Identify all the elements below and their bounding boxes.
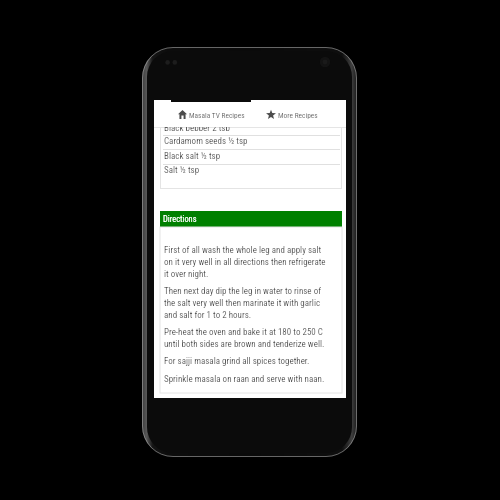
button[interactable]: Masala TV Recipes bbox=[171, 100, 251, 128]
button[interactable]: Black pepper 2 tsp bbox=[160, 127, 342, 135]
staticText: Cardamom seeds ½ tsp bbox=[164, 136, 248, 147]
button[interactable]: Cardamom seeds ½ tsp bbox=[160, 134, 342, 149]
staticText: For sajji masala grind all spices togeth… bbox=[164, 356, 310, 367]
staticText: Black salt ½ tsp bbox=[164, 151, 221, 162]
staticText: More Recipes bbox=[278, 111, 318, 120]
staticText: Directions bbox=[163, 214, 197, 224]
button[interactable]: More Recipes bbox=[256, 100, 327, 128]
staticText: Masala TV Recipes bbox=[189, 111, 245, 120]
staticText: Then next day dip the leg in water to ri… bbox=[164, 286, 330, 320]
staticText: Salt ½ tsp bbox=[164, 165, 200, 176]
button[interactable]: Directions bbox=[160, 211, 342, 227]
button[interactable]: Salt ½ tsp bbox=[160, 163, 342, 178]
staticText: Sprinkle masala on raan and serve with n… bbox=[164, 374, 325, 385]
staticText: Pre-heat the oven and bake it at 180 to … bbox=[164, 327, 330, 349]
staticText: First of all wash the whole leg and appl… bbox=[164, 245, 330, 279]
staticText: Black pepper 2 tsp bbox=[164, 127, 230, 131]
button[interactable]: Black salt ½ tsp bbox=[160, 149, 342, 164]
